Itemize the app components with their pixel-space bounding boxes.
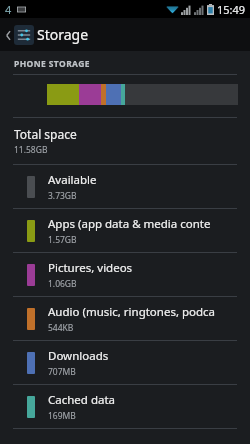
staticText: PHONE STORAGE	[14, 58, 90, 70]
staticText: Apps (app data & media conte	[48, 216, 211, 232]
staticText: Downloads	[48, 348, 109, 364]
staticText: Pictures, videos	[48, 260, 133, 276]
staticText: 15:49	[217, 2, 246, 17]
button[interactable]: Available	[0, 165, 250, 208]
staticText: Cached data	[48, 392, 116, 408]
staticText: 3.73GB	[48, 190, 77, 202]
staticText: Available	[48, 172, 97, 188]
button[interactable]: Pictures, videos	[0, 253, 250, 296]
staticText: Total space	[14, 126, 77, 142]
staticText: 1.57GB	[48, 234, 77, 246]
button[interactable]: Navigate up	[3, 25, 36, 45]
button[interactable]: Cached data	[0, 385, 250, 428]
button[interactable]: Downloads	[0, 341, 250, 384]
staticText: 169MB	[48, 410, 76, 422]
button[interactable]: Total space	[0, 118, 250, 164]
button[interactable]: Audio (music, ringtones, podca	[0, 297, 250, 340]
staticText: 11.58GB	[14, 144, 48, 156]
staticText: 707MB	[48, 366, 76, 378]
staticText: 1.06GB	[48, 278, 77, 290]
button[interactable]: Apps (app data & media conte	[0, 209, 250, 252]
staticText: 544KB	[48, 322, 74, 334]
staticText: Storage	[37, 25, 89, 44]
staticText: 4	[5, 2, 12, 17]
staticText: Audio (music, ringtones, podca	[48, 304, 216, 320]
